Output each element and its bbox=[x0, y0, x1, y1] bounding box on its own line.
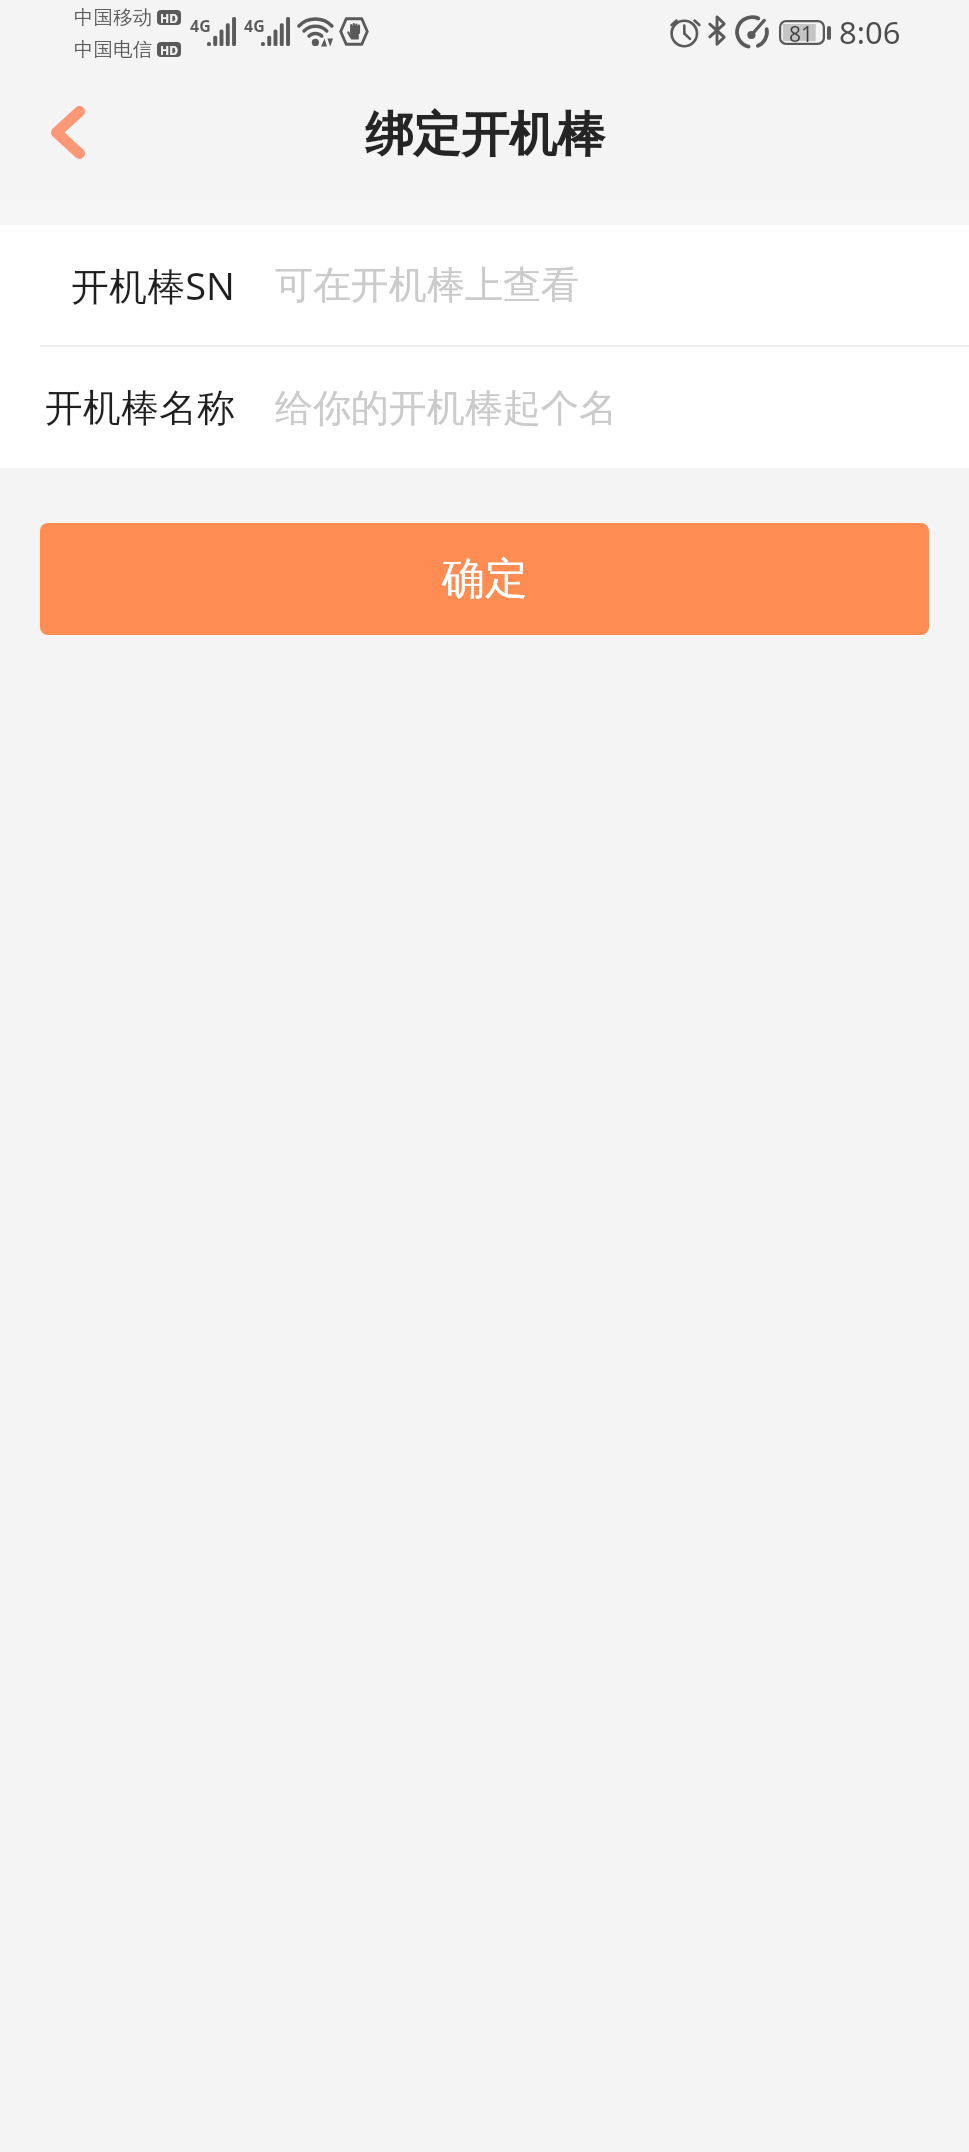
staticText: HD bbox=[160, 10, 178, 25]
staticText: HD bbox=[160, 42, 178, 57]
button[interactable]: 确定 bbox=[40, 523, 929, 635]
staticText: 可在开机棒上查看 bbox=[275, 261, 579, 309]
staticText: 81 bbox=[789, 20, 814, 45]
staticText: 8:06 bbox=[839, 11, 901, 53]
button[interactable]: Back bbox=[22, 83, 113, 181]
staticText: 开机棒SN bbox=[71, 259, 235, 311]
staticText: 开机棒名称 bbox=[45, 384, 235, 432]
staticText: 4G bbox=[190, 15, 211, 37]
staticText: 绑定开机棒 bbox=[365, 105, 605, 165]
button[interactable]: 开机棒名称 bbox=[0, 347, 969, 468]
staticText: 给你的开机棒起个名 bbox=[275, 384, 617, 432]
button[interactable]: 开机棒SN bbox=[0, 225, 969, 345]
staticText: 中国移动 bbox=[74, 5, 152, 30]
staticText: 中国电信 bbox=[74, 37, 152, 62]
staticText: 4G bbox=[244, 15, 265, 37]
staticText: 确定 bbox=[442, 552, 528, 606]
